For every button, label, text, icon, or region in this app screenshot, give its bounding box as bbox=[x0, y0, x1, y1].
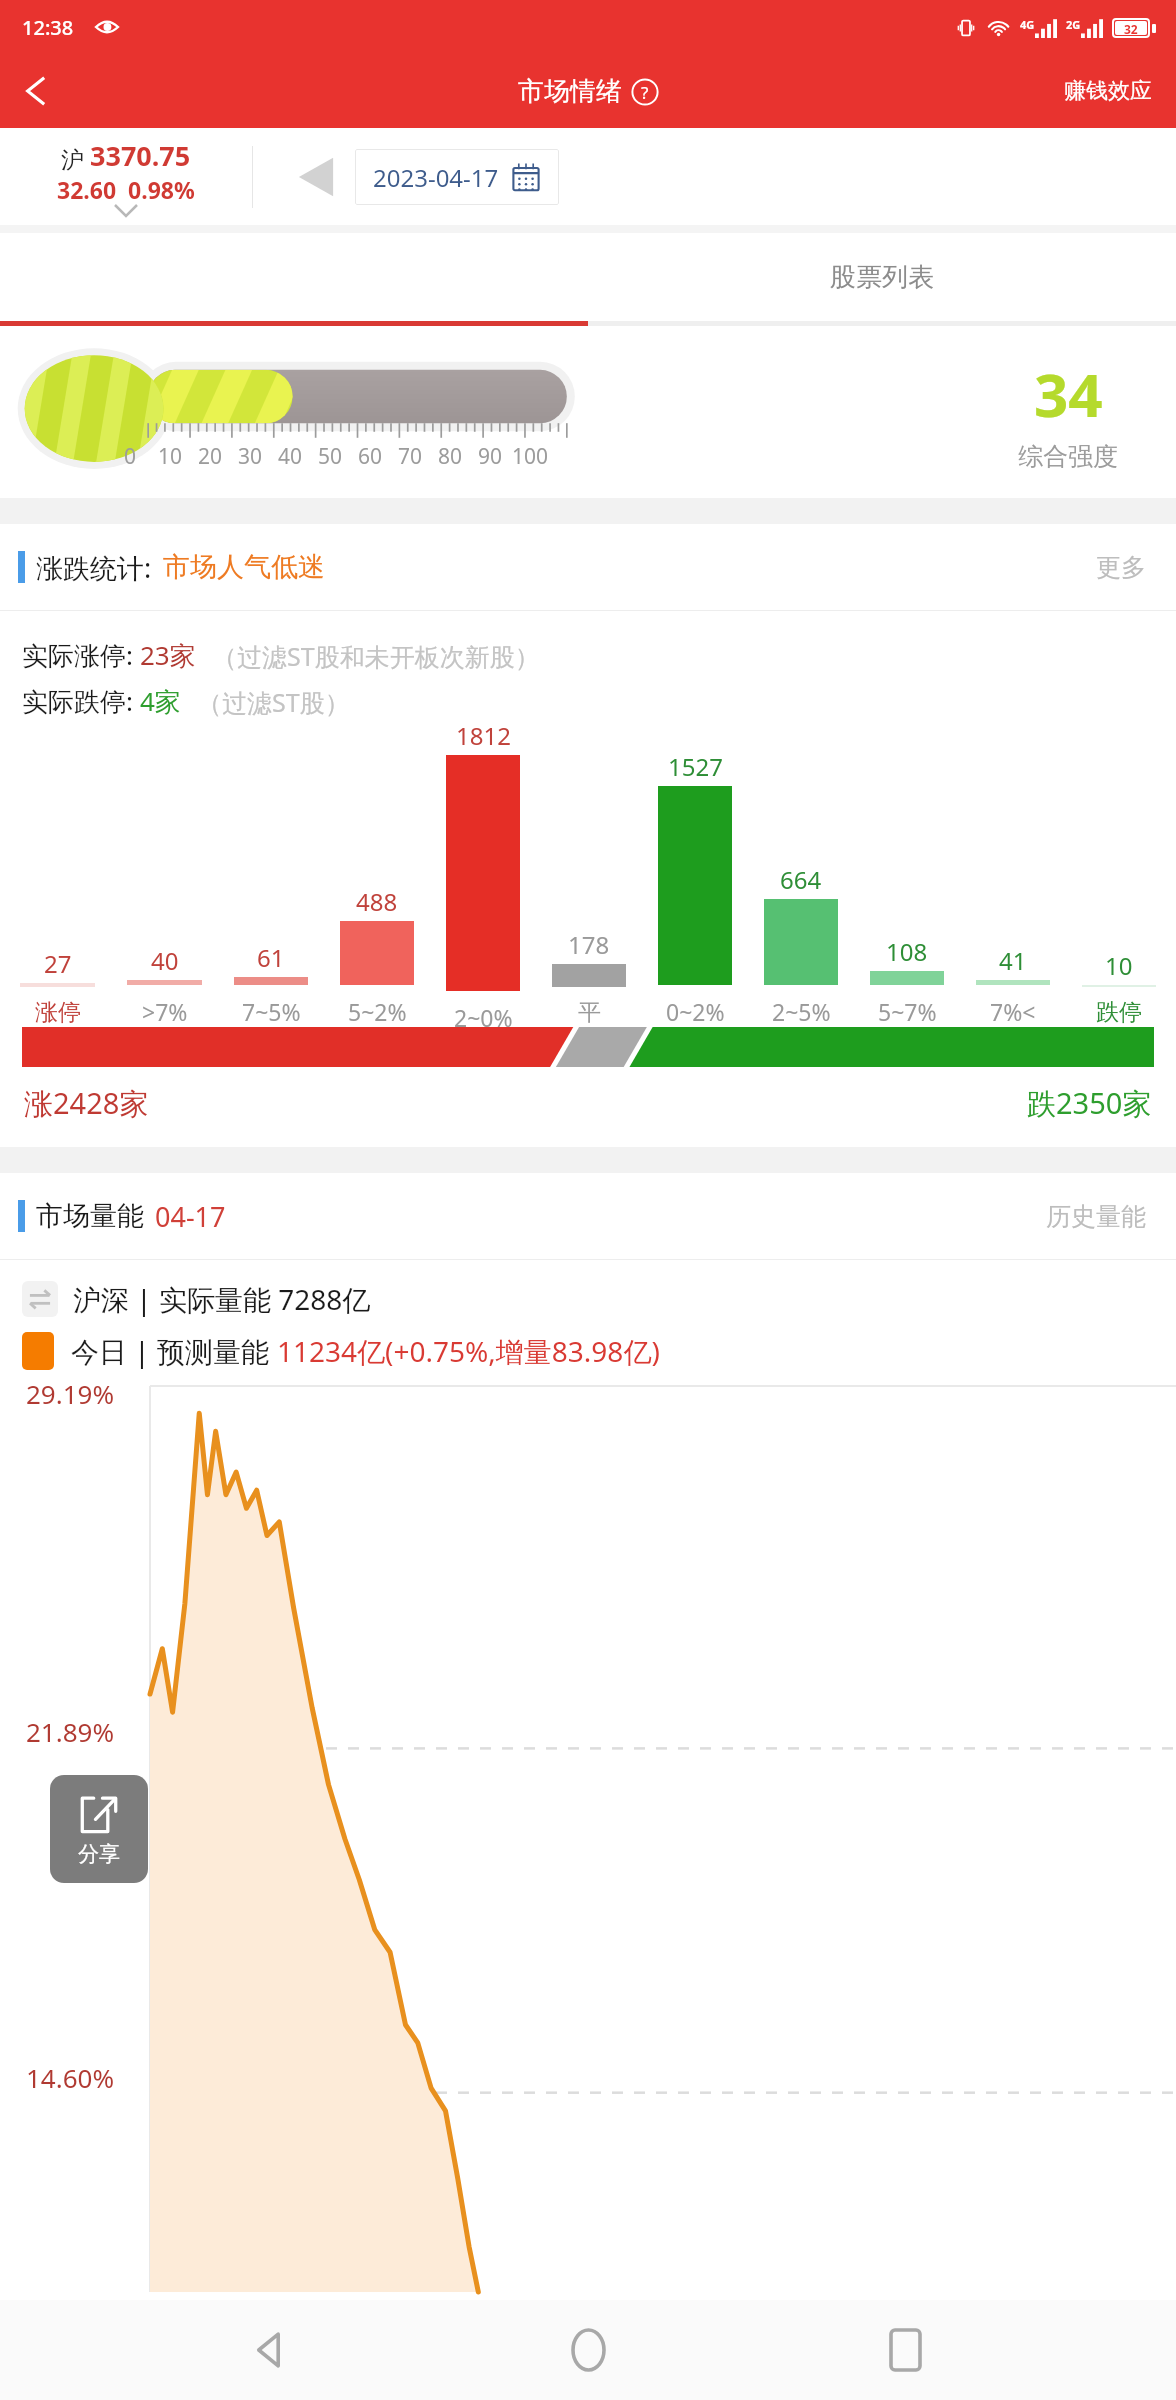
staticText: 市场人气低迷 bbox=[163, 550, 325, 584]
staticText: 11234亿(+0.75%,增量83.98亿) bbox=[277, 1332, 660, 1370]
button[interactable]: 分享 bbox=[50, 1775, 148, 1883]
staticText: 10 bbox=[1105, 949, 1133, 982]
staticText: 分享 bbox=[78, 1841, 120, 1867]
staticText: 今日 | 预测量能 bbox=[71, 1332, 277, 1370]
button[interactable]: 历史量能 bbox=[1040, 1195, 1152, 1238]
staticText: （过滤ST股） bbox=[197, 685, 350, 719]
staticText: 跌2350家 bbox=[1027, 1083, 1152, 1123]
staticText: 100 bbox=[512, 442, 549, 471]
button[interactable]: 主页 bbox=[542, 2304, 634, 2396]
staticText: 涨2428家 bbox=[24, 1083, 149, 1123]
staticText: （过滤ST股和未开板次新股） bbox=[212, 639, 540, 673]
staticText: 2023-04-17 bbox=[373, 161, 499, 194]
staticText: 488 bbox=[356, 885, 398, 918]
staticText: 综合强度 bbox=[1018, 441, 1118, 472]
staticText: 1527 bbox=[668, 750, 723, 783]
staticText: 沪 bbox=[61, 143, 90, 174]
staticText: 2~0% bbox=[454, 1002, 513, 1027]
button[interactable]: 市场情绪 bbox=[518, 75, 659, 108]
staticText: 更多 bbox=[1096, 552, 1146, 583]
staticText: 实际涨停: bbox=[22, 637, 140, 673]
staticText: 27 bbox=[44, 947, 72, 980]
staticText: 沪深 | 实际量能 7288亿 bbox=[73, 1280, 371, 1318]
staticText: 1812 bbox=[456, 719, 511, 752]
staticText: ? bbox=[641, 81, 649, 104]
staticText: 40 bbox=[278, 442, 303, 471]
staticText: 61 bbox=[257, 941, 285, 974]
staticText: 跌停 bbox=[1096, 998, 1142, 1027]
staticText: 21.89% bbox=[26, 1714, 115, 1749]
staticText: 70 bbox=[398, 442, 423, 471]
staticText: 20 bbox=[198, 442, 223, 471]
staticText: 5~7% bbox=[878, 996, 937, 1027]
staticText: 股票列表 bbox=[830, 261, 934, 294]
staticText: 178 bbox=[568, 928, 610, 961]
staticText: 历史量能 bbox=[1046, 1201, 1146, 1232]
button[interactable]: 更多 bbox=[1090, 546, 1152, 589]
staticText: 市场量能 bbox=[36, 1199, 144, 1233]
staticText: 7%< bbox=[990, 996, 1036, 1027]
staticText: 32 bbox=[1124, 21, 1138, 35]
staticText: 60 bbox=[358, 442, 383, 471]
staticText: 10 bbox=[158, 442, 183, 471]
button[interactable]: 前一天 bbox=[297, 155, 335, 199]
staticText: 5~2% bbox=[348, 996, 407, 1027]
button[interactable]: 返回 bbox=[0, 55, 72, 127]
staticText: 04-17 bbox=[155, 1198, 226, 1235]
staticText: 40 bbox=[151, 944, 179, 977]
staticText: 90 bbox=[478, 442, 503, 471]
staticText: 平 bbox=[578, 998, 601, 1027]
staticText: 41 bbox=[999, 944, 1027, 977]
staticText: 50 bbox=[318, 442, 343, 471]
staticText: 涨跌统计: bbox=[36, 549, 152, 586]
button[interactable]: 最近任务 bbox=[859, 2304, 951, 2396]
staticText: 34 bbox=[1034, 353, 1103, 435]
staticText: 23家 bbox=[140, 637, 196, 673]
staticText: 0 bbox=[124, 442, 137, 471]
staticText: 2G bbox=[1066, 17, 1081, 32]
staticText: 7~5% bbox=[242, 996, 301, 1027]
staticText: 664 bbox=[780, 863, 822, 896]
staticText: 80 bbox=[438, 442, 463, 471]
staticText: 14.60% bbox=[26, 2060, 115, 2095]
button[interactable]: 沪 bbox=[0, 137, 252, 216]
button[interactable]: 2023-04-17 bbox=[355, 149, 559, 205]
staticText: 4G bbox=[1020, 17, 1035, 32]
staticText: 涨停 bbox=[35, 998, 81, 1027]
staticText: >7% bbox=[142, 996, 188, 1027]
staticText: 29.19% bbox=[26, 1376, 115, 1411]
staticText: 4家 bbox=[140, 683, 181, 719]
staticText: 3370.75 bbox=[90, 137, 191, 174]
staticText: 30 bbox=[238, 442, 263, 471]
staticText: 32.60 0.98% bbox=[57, 174, 195, 205]
staticText: 108 bbox=[886, 935, 928, 968]
staticText: 0~2% bbox=[666, 996, 725, 1027]
button[interactable]: 返回 bbox=[225, 2304, 317, 2396]
staticText: 2~5% bbox=[772, 996, 831, 1027]
button[interactable]: 股票列表 bbox=[588, 233, 1176, 321]
staticText: 12:38 bbox=[22, 14, 74, 41]
staticText: 实际跌停: bbox=[22, 683, 140, 719]
button[interactable]: 赚钱效应 bbox=[1056, 69, 1160, 113]
staticText: 市场情绪 bbox=[518, 75, 622, 108]
staticText: 赚钱效应 bbox=[1064, 77, 1152, 105]
